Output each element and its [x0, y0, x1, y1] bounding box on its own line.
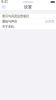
- staticText: 通知与声音: [2, 19, 17, 23]
- staticText: ›: [53, 14, 54, 18]
- button[interactable]: 关于本机: [0, 24, 56, 29]
- button[interactable]: 通知与声音: [0, 19, 56, 24]
- button[interactable]: Back: [2, 5, 6, 9]
- staticText: 已开启: [45, 19, 54, 23]
- staticText: 9:41: [1, 0, 7, 4]
- staticText: 显示与亮度设置项目: [2, 14, 29, 18]
- staticText: 设置: [24, 4, 32, 9]
- button[interactable]: 显示与亮度设置项目: [0, 14, 56, 19]
- staticText: 关于本机: [2, 25, 14, 29]
